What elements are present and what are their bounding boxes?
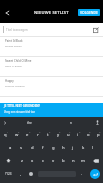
staticText: Paint It Black bbox=[5, 39, 23, 43]
staticText: s bbox=[20, 145, 23, 151]
staticText: a bbox=[9, 145, 12, 151]
button[interactable]: Sweet Child O Mine bbox=[0, 57, 103, 77]
button[interactable]: r bbox=[33, 128, 43, 141]
staticText: 4 bbox=[39, 130, 41, 133]
staticText: ?123 bbox=[5, 172, 12, 176]
staticText: x bbox=[31, 158, 34, 164]
staticText: Rolling Stones bbox=[5, 44, 22, 47]
staticText: q bbox=[4, 132, 7, 138]
staticText: 1 bbox=[7, 130, 9, 133]
staticText: c bbox=[42, 158, 45, 164]
staticText: n bbox=[70, 121, 72, 125]
button[interactable]: Open bbox=[89, 23, 103, 36]
staticText: Happy bbox=[5, 79, 14, 83]
staticText: Voeg een nieuwe titel toe bbox=[4, 110, 35, 114]
staticText: b bbox=[62, 158, 65, 164]
button[interactable]: Back bbox=[0, 6, 14, 20]
staticText: 2 bbox=[18, 130, 20, 133]
staticText: v bbox=[52, 158, 55, 164]
button[interactable]: n bbox=[50, 117, 92, 128]
staticText: Titel toevoegen bbox=[6, 28, 28, 32]
staticText: j bbox=[72, 145, 74, 151]
staticText: d bbox=[31, 145, 34, 151]
button[interactable]: i bbox=[73, 128, 83, 141]
staticText: 0 bbox=[99, 130, 101, 133]
staticText: i bbox=[77, 132, 79, 138]
button[interactable]: x bbox=[27, 154, 38, 167]
staticText: 8 bbox=[79, 130, 81, 133]
button[interactable]: Backspace bbox=[88, 154, 103, 167]
button[interactable]: Shift bbox=[0, 154, 16, 167]
staticText: g bbox=[52, 145, 55, 151]
button[interactable]: j bbox=[68, 141, 78, 154]
staticText: NIEUWE SETLIST bbox=[34, 10, 69, 16]
staticText: w bbox=[15, 132, 19, 138]
staticText: VOLGENDE bbox=[80, 10, 98, 15]
button[interactable]: a bbox=[5, 141, 16, 154]
button[interactable]: k bbox=[78, 141, 88, 154]
button[interactable]: o bbox=[83, 128, 93, 141]
staticText: the bbox=[27, 121, 32, 125]
staticText: 7 bbox=[69, 130, 71, 133]
staticText: p bbox=[97, 132, 100, 138]
staticText: m bbox=[81, 158, 85, 164]
staticText: 6 bbox=[59, 130, 61, 133]
button[interactable]: l bbox=[88, 141, 98, 154]
staticText: k bbox=[82, 145, 85, 151]
staticText: 5 bbox=[49, 130, 51, 133]
staticText: JE TITEL NIET GEVONDEN? bbox=[4, 104, 40, 108]
staticText: h bbox=[62, 145, 65, 151]
staticText: l bbox=[92, 145, 94, 151]
staticText: r bbox=[37, 132, 39, 138]
staticText: f bbox=[42, 145, 44, 151]
button[interactable]: q bbox=[0, 128, 11, 141]
button[interactable]: n bbox=[68, 154, 78, 167]
button[interactable] bbox=[36, 167, 77, 180]
button[interactable]: f bbox=[38, 141, 48, 154]
button[interactable]: y bbox=[53, 128, 63, 141]
staticText: Sweet Child O Mine bbox=[5, 59, 32, 63]
button[interactable]: c bbox=[38, 154, 48, 167]
staticText: Pharrell Williams bbox=[5, 84, 25, 87]
button[interactable]: p bbox=[93, 128, 103, 141]
staticText: e bbox=[26, 132, 29, 138]
button[interactable]: h bbox=[58, 141, 68, 154]
button[interactable]: Happy bbox=[0, 77, 103, 97]
button[interactable]: w bbox=[11, 128, 22, 141]
button[interactable]: z bbox=[16, 154, 27, 167]
button[interactable]: the bbox=[9, 117, 50, 128]
button[interactable]: JE TITEL NIET GEVONDEN? bbox=[0, 103, 103, 117]
button[interactable]: , bbox=[16, 167, 26, 180]
staticText: 3 bbox=[29, 130, 31, 133]
staticText: y bbox=[57, 132, 60, 138]
button[interactable]: s bbox=[16, 141, 27, 154]
button[interactable]: b bbox=[58, 154, 68, 167]
button[interactable]: u bbox=[63, 128, 73, 141]
button[interactable]: v bbox=[48, 154, 58, 167]
button[interactable]: ?123 bbox=[0, 167, 16, 180]
button[interactable]: d bbox=[27, 141, 38, 154]
button[interactable]: m bbox=[78, 154, 88, 167]
button[interactable]: . bbox=[77, 167, 87, 180]
staticText: Guns N' Roses bbox=[5, 64, 22, 67]
staticText: u bbox=[67, 132, 70, 138]
button[interactable]: Emoji bbox=[26, 167, 36, 180]
staticText: t bbox=[47, 132, 49, 138]
button[interactable]: t bbox=[43, 128, 53, 141]
staticText: z bbox=[21, 158, 23, 164]
staticText: 9 bbox=[89, 130, 91, 133]
button[interactable]: Paint It Black bbox=[0, 37, 103, 57]
button[interactable]: More suggestions bbox=[0, 117, 9, 128]
staticText: o bbox=[87, 132, 90, 138]
button[interactable]: Voice input bbox=[92, 117, 103, 128]
staticText: n bbox=[72, 158, 75, 164]
button[interactable]: VOLGENDE bbox=[78, 9, 100, 16]
staticText: . bbox=[81, 171, 83, 177]
button[interactable]: Enter bbox=[87, 167, 103, 180]
button[interactable]: e bbox=[22, 128, 33, 141]
button[interactable]: g bbox=[48, 141, 58, 154]
staticText: , bbox=[20, 171, 22, 177]
